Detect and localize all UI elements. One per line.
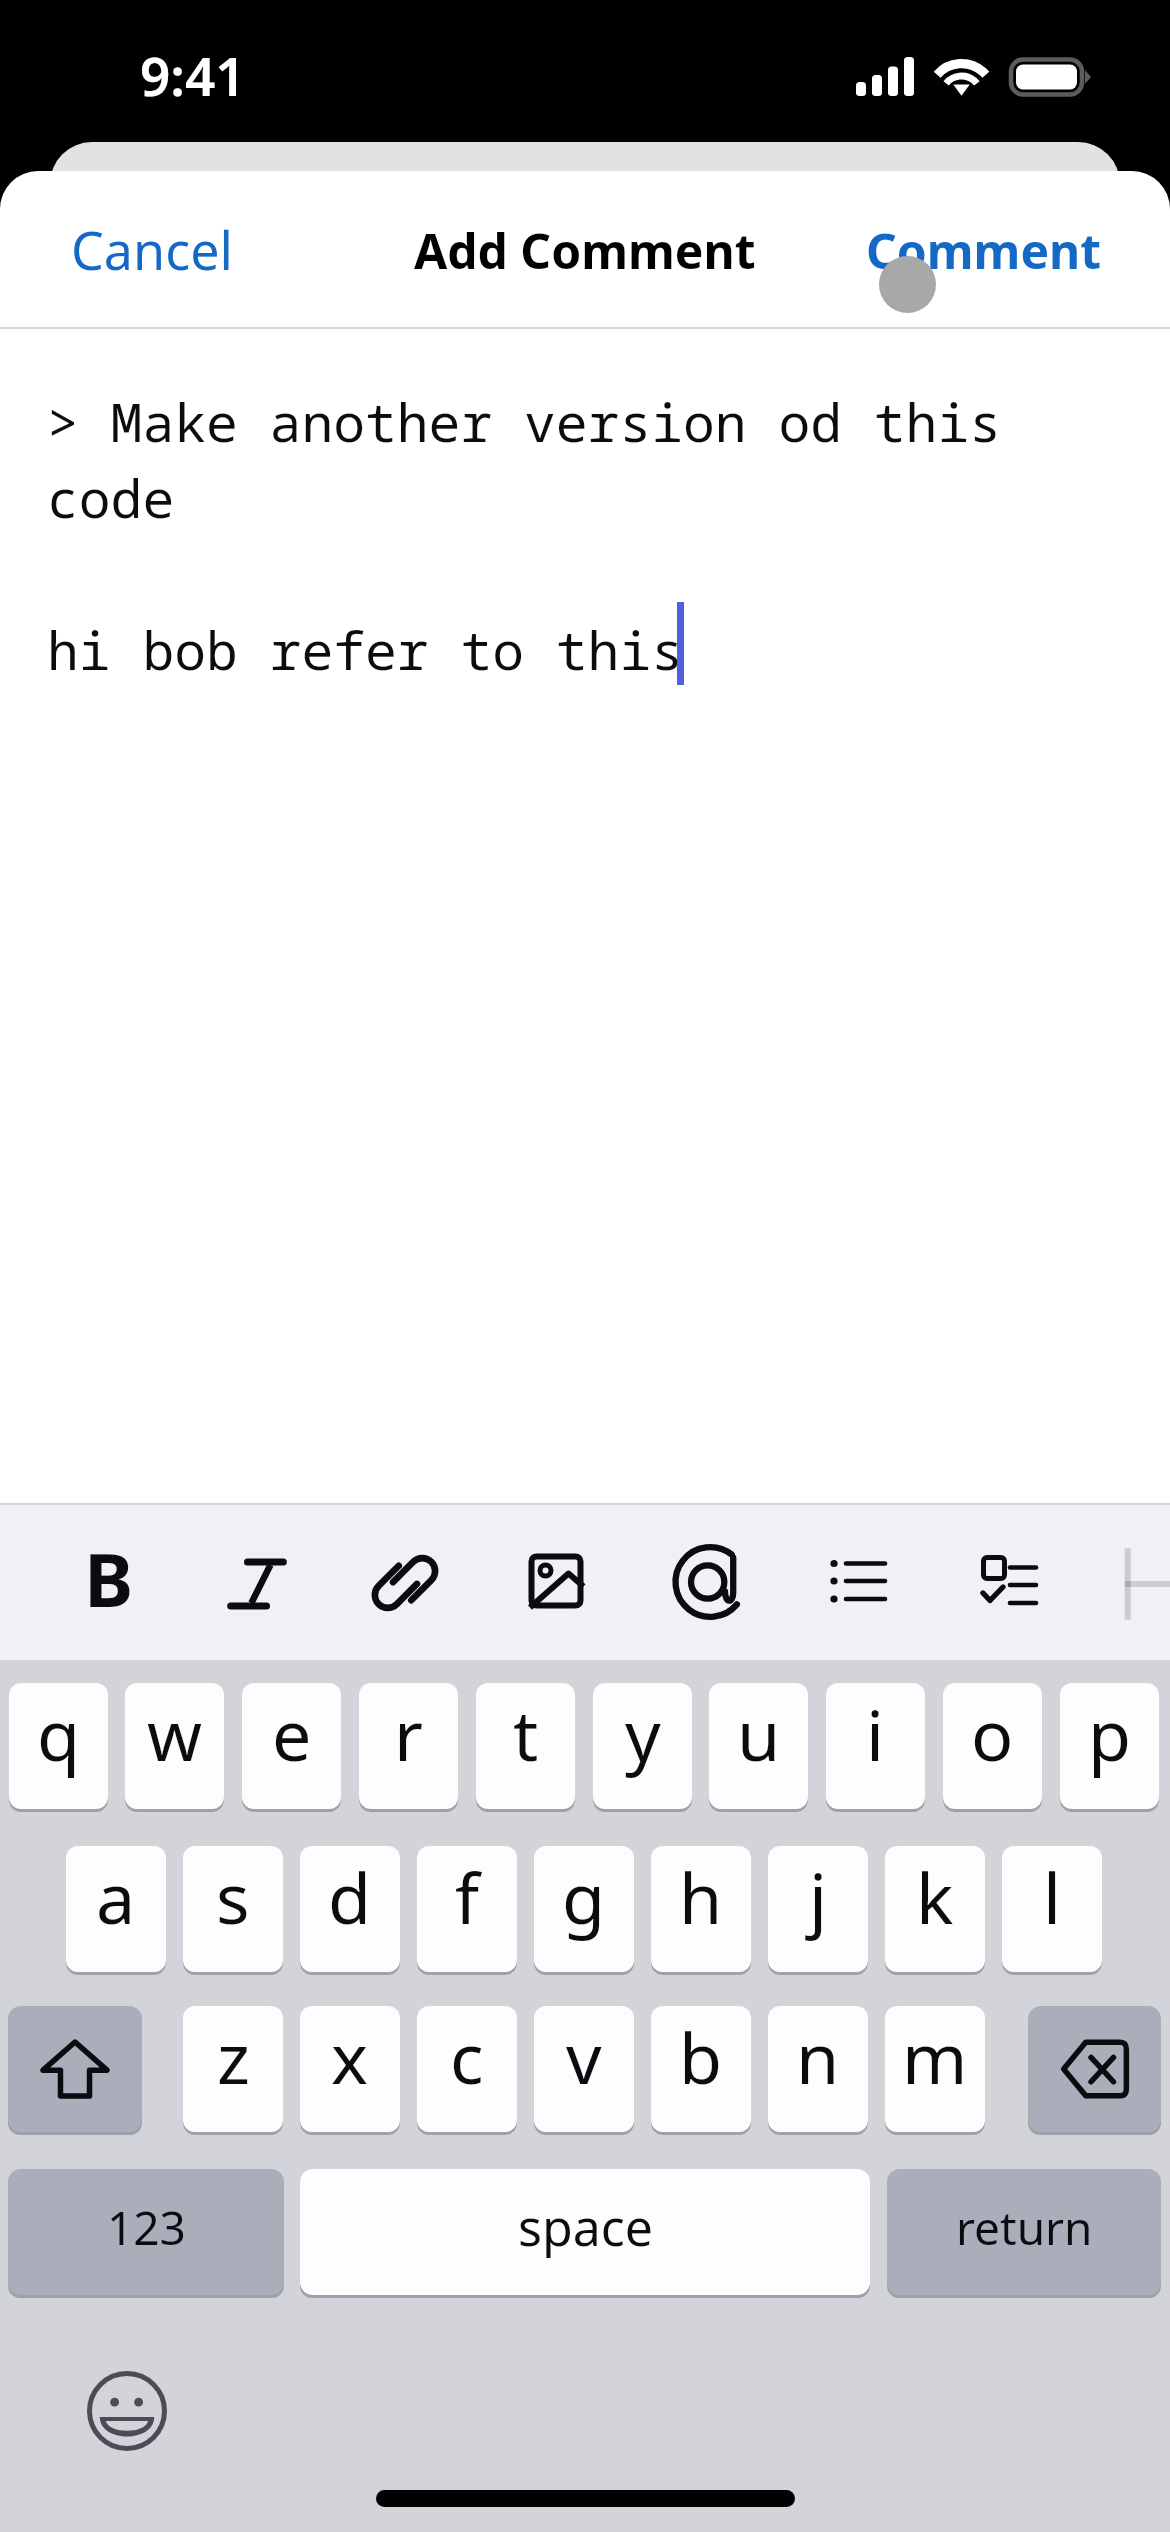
staticText: w — [147, 1686, 203, 1781]
button[interactable]: p — [1060, 1683, 1159, 1809]
staticText: i — [866, 1686, 885, 1781]
button[interactable]: k — [885, 1846, 985, 1972]
staticText: 123 — [107, 2196, 186, 2259]
staticText: g — [562, 1849, 606, 1944]
staticText: q — [37, 1686, 81, 1781]
button[interactable]: Mention — [633, 1507, 781, 1660]
button[interactable]: t — [476, 1683, 575, 1809]
button[interactable]: g — [534, 1846, 634, 1972]
button[interactable]: Emoji — [87, 2371, 167, 2451]
staticText: b — [679, 2009, 723, 2104]
button[interactable]: Bold — [35, 1507, 183, 1660]
staticText: return — [956, 2196, 1093, 2259]
button[interactable]: x — [300, 2006, 400, 2132]
button[interactable]: Cancel — [57, 196, 247, 303]
button[interactable]: Image — [482, 1507, 630, 1660]
staticText: Comment — [866, 218, 1102, 283]
button[interactable]: q — [9, 1683, 108, 1809]
staticText: Cancel — [71, 214, 233, 285]
staticText: a — [96, 1849, 136, 1944]
button[interactable]: f — [417, 1846, 517, 1972]
button[interactable]: d — [300, 1846, 400, 1972]
button[interactable]: Bulleted list — [783, 1507, 931, 1660]
staticText: p — [1088, 1686, 1132, 1781]
button[interactable]: e — [242, 1683, 341, 1809]
staticText: B — [84, 1528, 134, 1629]
staticText: u — [737, 1686, 781, 1781]
button[interactable]: b — [651, 2006, 751, 2132]
button[interactable]: r — [359, 1683, 458, 1809]
staticText: s — [216, 1849, 250, 1944]
button[interactable]: z — [183, 2006, 283, 2132]
button[interactable]: o — [943, 1683, 1042, 1809]
button[interactable]: space — [300, 2169, 870, 2295]
staticText: j — [809, 1849, 828, 1944]
staticText: Add Comment — [414, 218, 756, 283]
button[interactable]: Shift — [8, 2006, 142, 2132]
staticText: 9:41 — [140, 39, 246, 111]
staticText: h — [679, 1849, 723, 1944]
button[interactable]: a — [66, 1846, 166, 1972]
staticText: space — [518, 2193, 653, 2261]
staticText: n — [796, 2009, 840, 2104]
staticText: d — [328, 1849, 372, 1944]
button[interactable]: n — [768, 2006, 868, 2132]
button[interactable]: j — [768, 1846, 868, 1972]
staticText: c — [450, 2009, 484, 2104]
button[interactable]: 123 — [8, 2169, 284, 2295]
button[interactable]: u — [709, 1683, 808, 1809]
staticText: l — [1043, 1849, 1062, 1944]
staticText: t — [513, 1686, 539, 1781]
button[interactable]: i — [826, 1683, 925, 1809]
staticText: > Make another version od this code hi b… — [47, 385, 1001, 685]
staticText: o — [971, 1686, 1014, 1781]
button[interactable]: Italic — [183, 1507, 331, 1660]
button[interactable]: return — [887, 2169, 1161, 2295]
staticText: m — [902, 2009, 968, 2104]
button[interactable]: Heading — [1081, 1507, 1170, 1660]
button[interactable]: Comment — [852, 200, 1116, 301]
staticText: z — [217, 2009, 250, 2104]
button[interactable]: Checklist — [935, 1507, 1083, 1660]
staticText: e — [272, 1686, 312, 1781]
staticText: y — [625, 1686, 661, 1781]
staticText: k — [916, 1849, 954, 1944]
button[interactable]: Link — [331, 1507, 479, 1660]
button[interactable]: c — [417, 2006, 517, 2132]
staticText: x — [331, 2009, 369, 2104]
staticText: r — [394, 1686, 423, 1781]
staticText: v — [566, 2009, 602, 2104]
button[interactable]: h — [651, 1846, 751, 1972]
button[interactable]: l — [1002, 1846, 1102, 1972]
button[interactable]: m — [885, 2006, 985, 2132]
button[interactable]: y — [593, 1683, 692, 1809]
button[interactable]: Backspace — [1028, 2006, 1161, 2132]
staticText: f — [455, 1849, 480, 1944]
button[interactable]: w — [125, 1683, 224, 1809]
button[interactable]: s — [183, 1846, 283, 1972]
button[interactable]: v — [534, 2006, 634, 2132]
